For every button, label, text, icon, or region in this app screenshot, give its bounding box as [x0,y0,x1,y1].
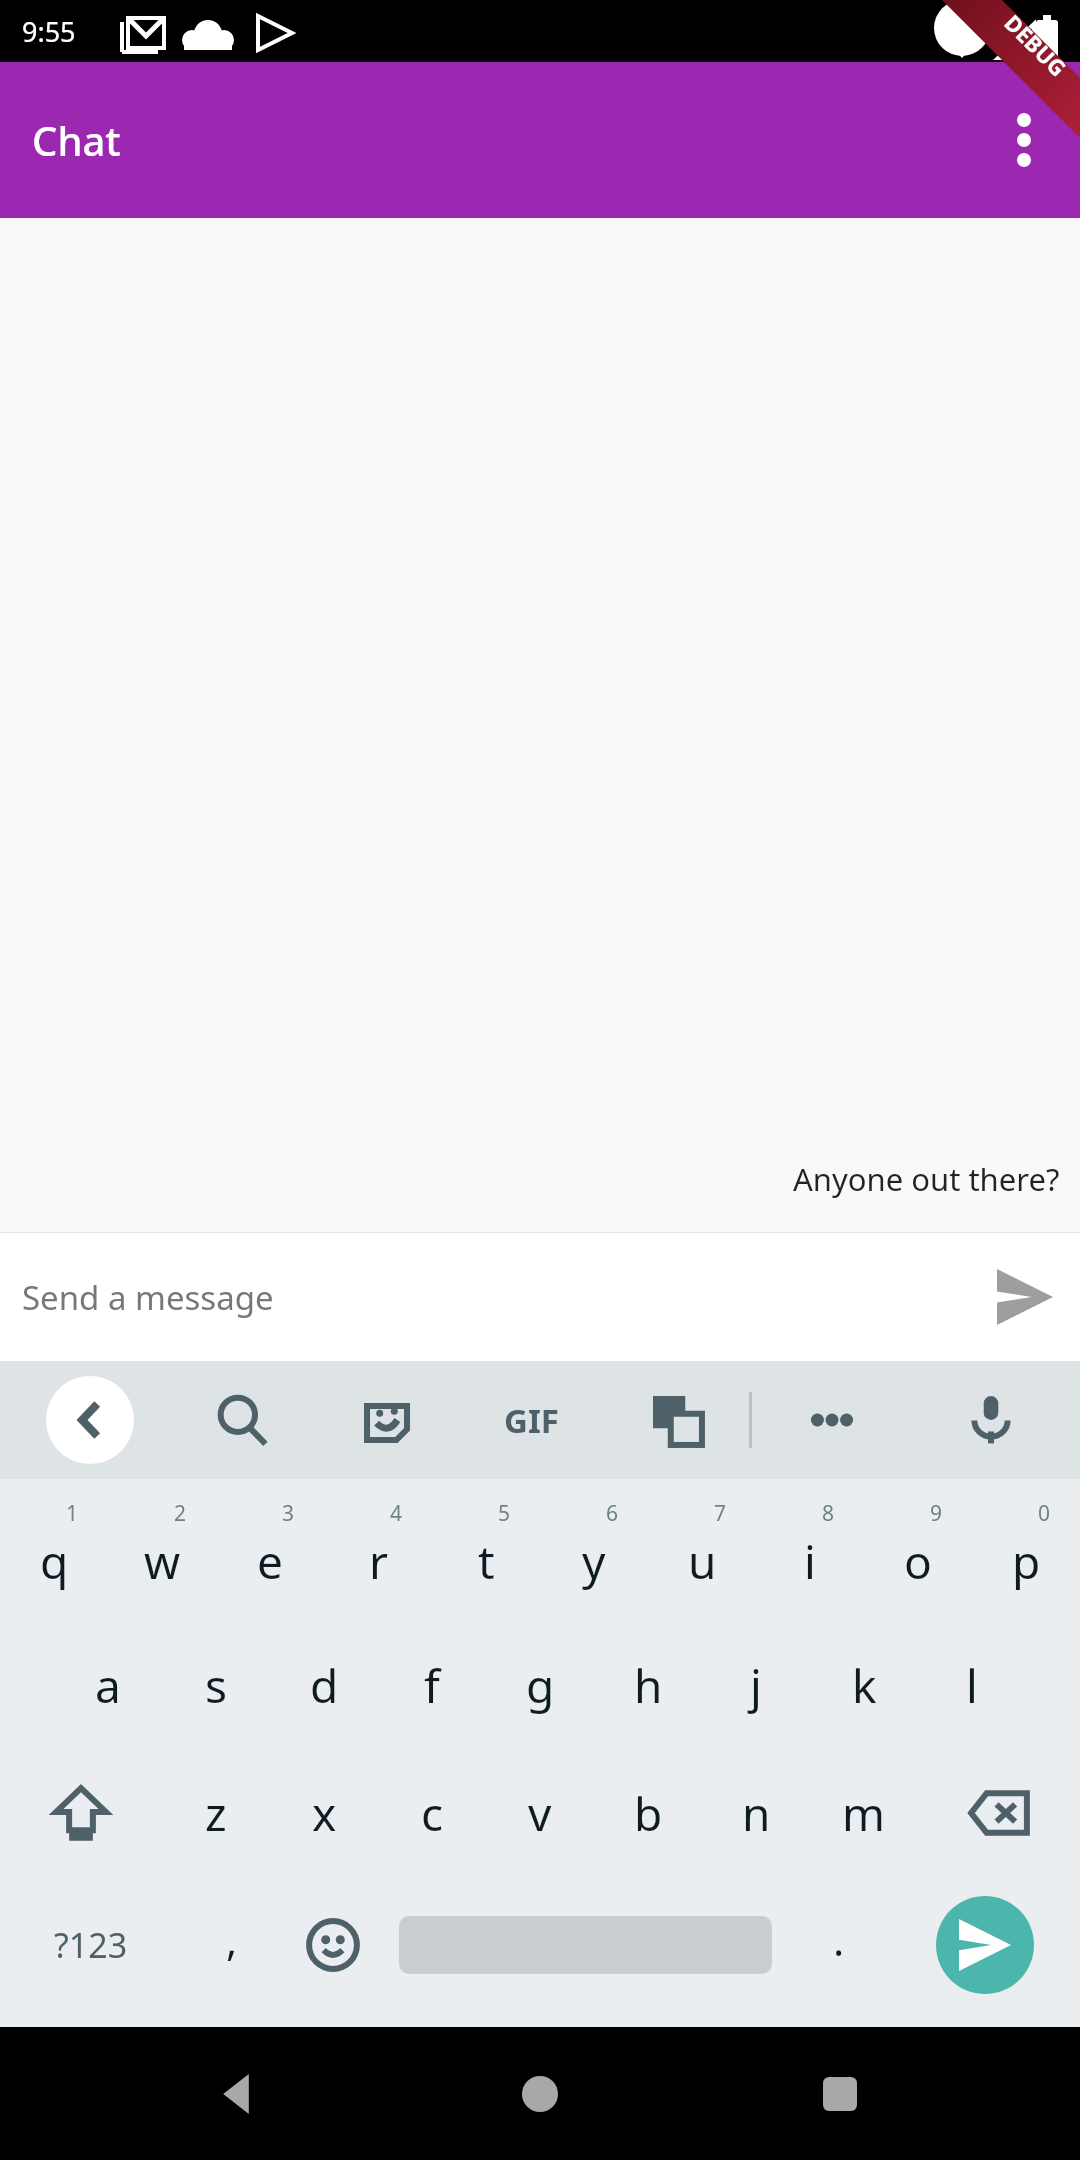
button[interactable]: d [270,1621,378,1749]
staticText: b [634,1782,663,1845]
staticText: r [369,1530,388,1593]
staticText: x [312,1782,337,1845]
button[interactable]: 4 [324,1493,432,1621]
staticText: a [95,1654,121,1717]
button[interactable]: , [181,1877,282,2013]
button[interactable]: k [810,1621,918,1749]
staticText: p [1012,1530,1041,1593]
button[interactable]: Shift [0,1749,162,1877]
staticText: k [852,1654,877,1717]
staticText: h [634,1654,663,1717]
button[interactable]: . [788,1877,889,2013]
staticText: j [750,1654,762,1717]
button[interactable]: Back [10,1361,169,1479]
button[interactable]: a [54,1621,162,1749]
staticText: Chat [32,113,121,167]
staticText: f [424,1654,440,1717]
button[interactable]: ?123 [0,1877,181,2013]
staticText: 9 [930,1499,943,1528]
button[interactable]: Stickers [314,1361,459,1479]
button[interactable]: More options [982,98,1066,182]
button[interactable]: 5 [432,1493,540,1621]
staticText: q [40,1530,69,1593]
button[interactable]: z [162,1749,270,1877]
staticText: ?123 [54,1922,128,1968]
button[interactable]: Emoji [282,1877,383,2013]
staticText: w [144,1530,181,1593]
staticText: , [226,1911,238,1968]
button[interactable]: g [486,1621,594,1749]
staticText: 5 [498,1499,511,1528]
button[interactable]: Home [480,2034,600,2154]
button[interactable]: n [702,1749,810,1877]
staticText: i [804,1530,816,1593]
button[interactable]: c [378,1749,486,1877]
staticText: u [688,1530,717,1593]
staticText: n [742,1782,771,1845]
button[interactable]: 1 [0,1493,108,1621]
staticText: 1 [66,1499,79,1528]
staticText: DEBUG [998,7,1073,82]
button[interactable]: x [270,1749,378,1877]
button[interactable]: Send a message [0,1233,970,1361]
staticText: 9:55 [22,13,76,50]
staticText: e [257,1530,283,1593]
button[interactable]: Voice input [911,1361,1070,1479]
staticText: Anyone out there? [793,1158,1060,1200]
staticText: 0 [1038,1499,1051,1528]
button[interactable]: 9 [864,1493,972,1621]
staticText: GIF [504,1398,559,1443]
button[interactable]: Translate [604,1361,749,1479]
button[interactable]: 2 [108,1493,216,1621]
button[interactable]: 7 [648,1493,756,1621]
staticText: v [528,1782,552,1845]
staticText: Send a message [22,1275,274,1320]
button[interactable]: 3 [216,1493,324,1621]
staticText: 2 [174,1499,187,1528]
button[interactable]: b [594,1749,702,1877]
staticText: g [526,1654,555,1717]
staticText: m [842,1782,886,1845]
button[interactable]: Recents [780,2034,900,2154]
button[interactable]: Send [889,1877,1080,2013]
staticText: z [205,1782,227,1845]
staticText: 4 [390,1499,403,1528]
button[interactable]: Backspace [918,1749,1080,1877]
button[interactable]: m [810,1749,918,1877]
button[interactable]: Search [169,1361,314,1479]
staticText: 7 [714,1499,727,1528]
staticText: d [310,1654,339,1717]
button[interactable]: 8 [756,1493,864,1621]
button[interactable]: 6 [540,1493,648,1621]
staticText: y [582,1530,606,1593]
button[interactable]: 0 [972,1493,1080,1621]
staticText: 8 [822,1499,835,1528]
button[interactable]: s [162,1621,270,1749]
staticText: t [478,1530,495,1593]
staticText: s [205,1654,228,1717]
button[interactable]: Back [180,2034,300,2154]
button[interactable]: v [486,1749,594,1877]
staticText: c [421,1782,444,1845]
staticText: o [904,1530,932,1593]
button[interactable]: GIF [459,1361,604,1479]
staticText: 3 [282,1499,295,1528]
button[interactable]: l [918,1621,1026,1749]
button[interactable]: More [752,1361,911,1479]
button[interactable]: Space [383,1877,788,2013]
button[interactable]: f [378,1621,486,1749]
button[interactable]: j [702,1621,810,1749]
button[interactable]: Send [970,1242,1080,1352]
staticText: 6 [606,1499,619,1528]
staticText: . [833,1911,845,1968]
staticText: l [966,1654,978,1717]
button[interactable]: h [594,1621,702,1749]
